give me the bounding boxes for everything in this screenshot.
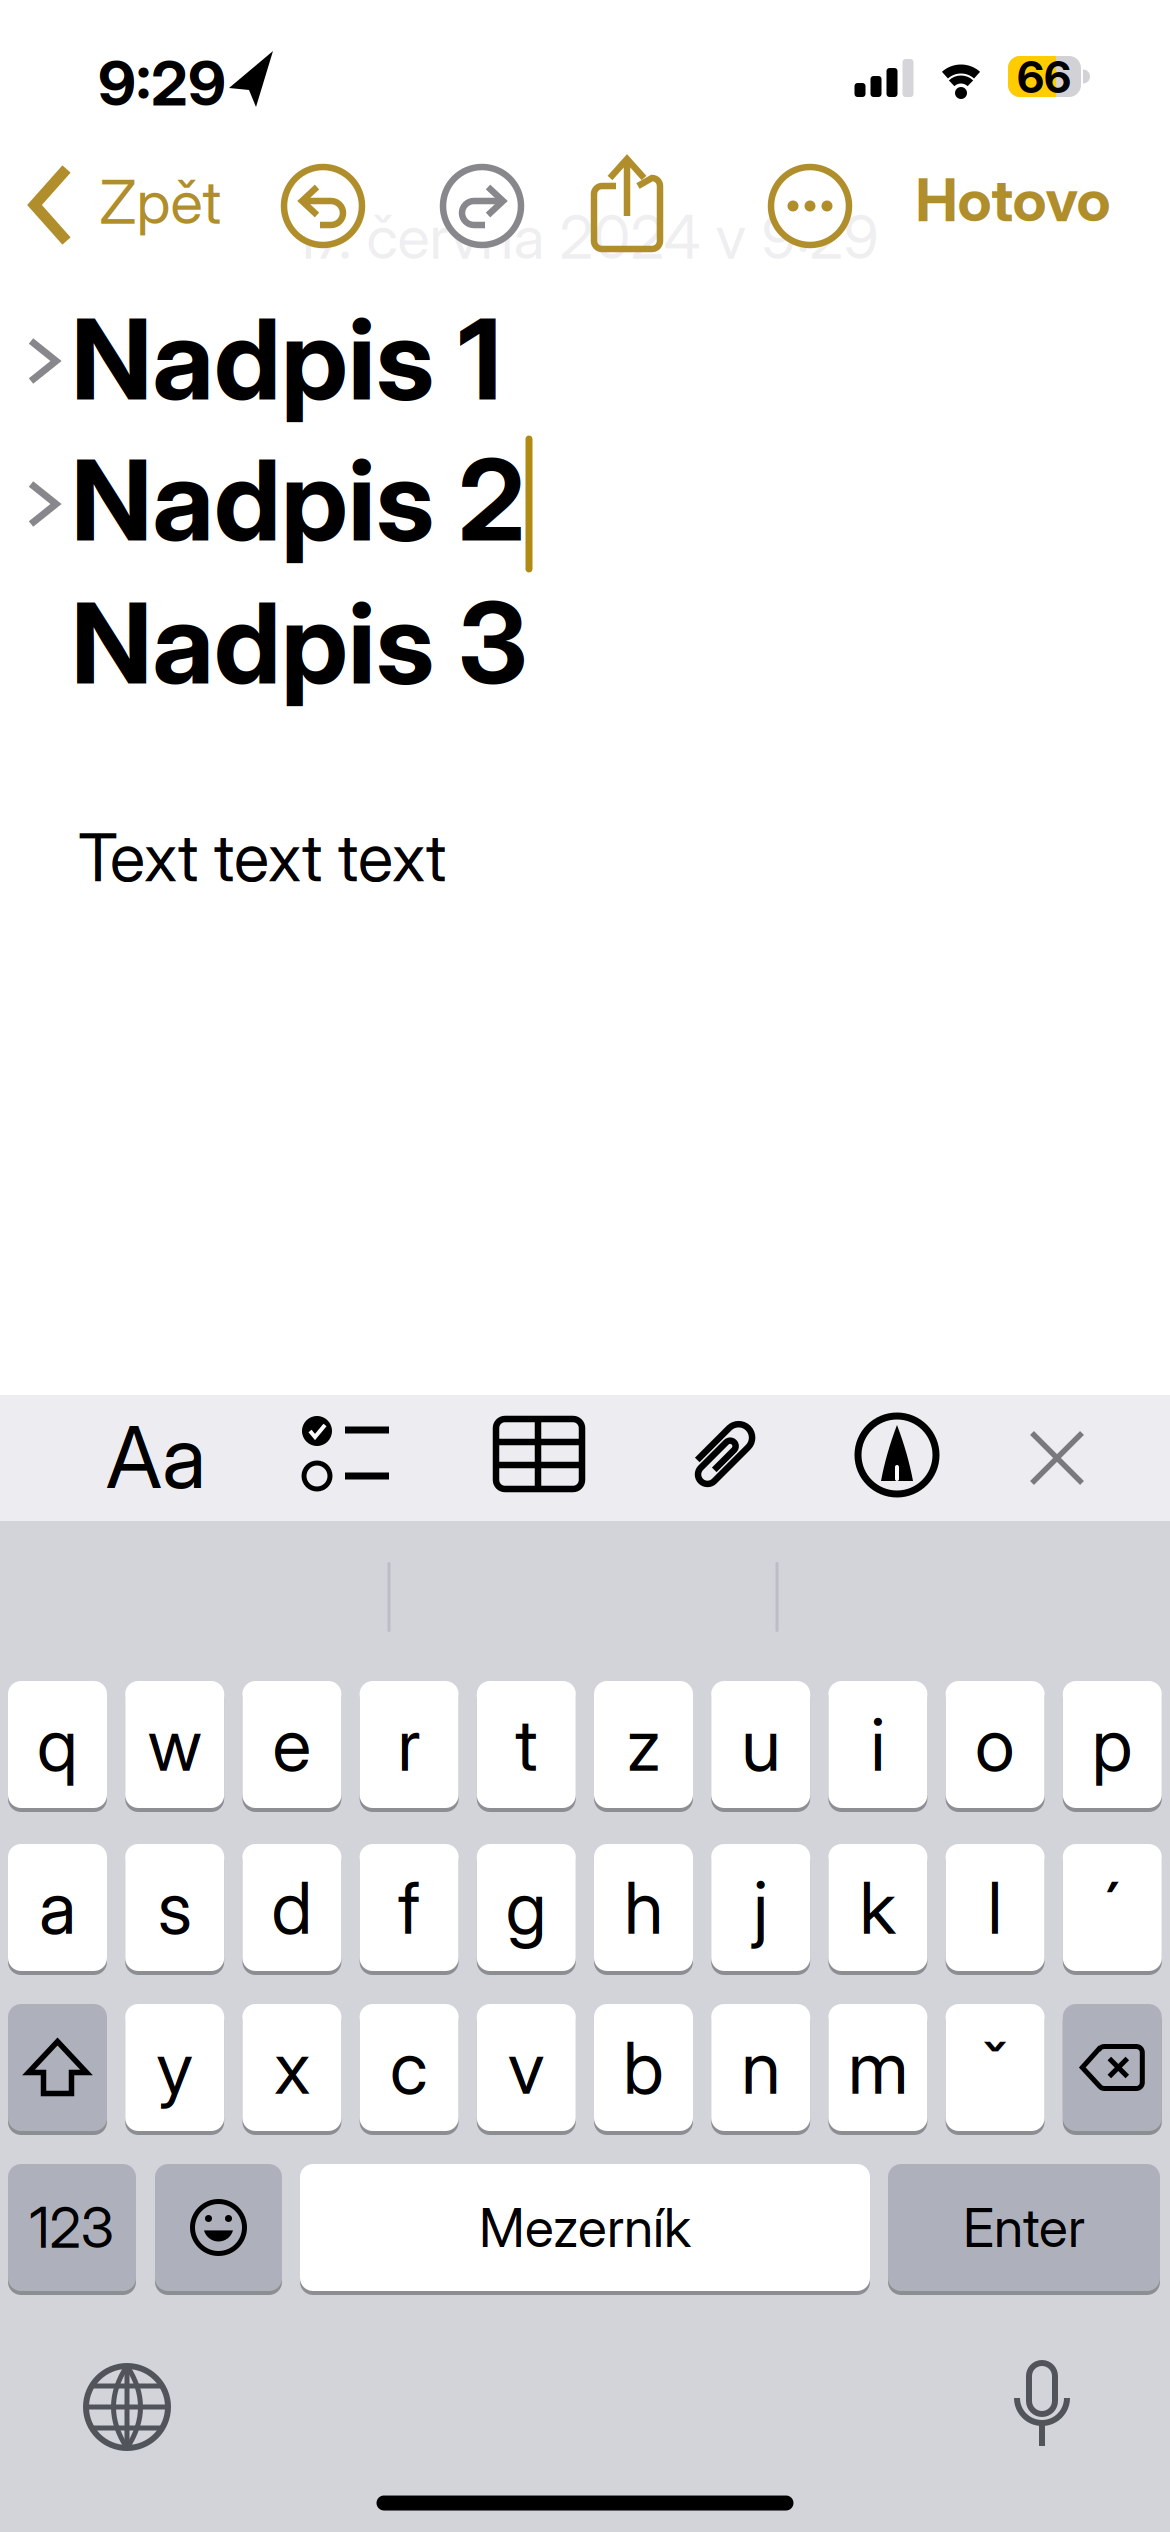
button[interactable]: m [828, 2002, 927, 2133]
button[interactable] [590, 154, 668, 250]
button[interactable]: w [125, 1679, 224, 1810]
staticText: 123 [29, 2194, 114, 2261]
staticText: u [741, 1701, 780, 1788]
button[interactable]: Mezerník [300, 2162, 870, 2293]
staticText: v [508, 2024, 545, 2111]
button[interactable] [1063, 2002, 1162, 2133]
button[interactable] [27, 480, 61, 528]
staticText: l [988, 1864, 1003, 1951]
staticText: 17. června 2024 v 9:29 [293, 201, 878, 273]
staticText: h [624, 1864, 663, 1951]
staticText: Zpět [99, 166, 221, 238]
staticText: Text text text [78, 818, 446, 897]
staticText: d [271, 1864, 312, 1951]
staticText: f [398, 1864, 420, 1951]
button[interactable]: f [360, 1842, 459, 1973]
button[interactable]: ˇ [946, 2002, 1045, 2133]
button[interactable]: z [594, 1679, 693, 1810]
staticText: j [753, 1864, 768, 1951]
staticText: t [515, 1701, 537, 1788]
button[interactable]: n [711, 2002, 810, 2133]
button[interactable]: a [8, 1842, 107, 1973]
button[interactable]: j [711, 1842, 810, 1973]
button[interactable]: t [477, 1679, 576, 1810]
staticText: p [1092, 1701, 1133, 1788]
staticText: Mezerník [479, 2195, 691, 2260]
button[interactable]: k [828, 1842, 927, 1973]
staticText: Hotovo [915, 164, 1110, 235]
staticText: r [398, 1701, 421, 1788]
staticText: c [390, 2024, 428, 2111]
staticText: w [148, 1701, 202, 1788]
button[interactable] [155, 2162, 282, 2293]
button[interactable]: Zpět [27, 165, 262, 245]
button[interactable]: b [594, 2002, 693, 2133]
staticText: g [506, 1864, 547, 1951]
button[interactable] [854, 1412, 940, 1498]
button[interactable]: 123 [8, 2162, 136, 2293]
button[interactable]: c [360, 2002, 459, 2133]
button[interactable] [279, 162, 367, 250]
staticText: 9:29 [98, 46, 226, 120]
button[interactable] [679, 1412, 765, 1498]
staticText: z [626, 1701, 660, 1788]
button[interactable]: u [711, 1679, 810, 1810]
button[interactable]: Enter [888, 2162, 1160, 2293]
button[interactable]: e [242, 1679, 341, 1810]
staticText: Enter [963, 2195, 1085, 2260]
staticText: x [274, 2024, 310, 2111]
button[interactable]: i [828, 1679, 927, 1810]
button[interactable] [493, 1416, 585, 1492]
button[interactable]: x [242, 2002, 341, 2133]
staticText: k [859, 1864, 896, 1951]
staticText: ´ [1104, 1864, 1121, 1951]
staticText: Nadpis 1 [71, 291, 502, 426]
staticText: e [272, 1701, 311, 1788]
staticText: y [156, 2024, 193, 2111]
button[interactable]: p [1063, 1679, 1162, 1810]
button[interactable]: y [125, 2002, 224, 2133]
button[interactable]: Aa [106, 1405, 206, 1509]
button[interactable] [766, 162, 854, 250]
button[interactable] [438, 162, 526, 250]
button[interactable]: ´ [1063, 1842, 1162, 1973]
staticText: q [37, 1701, 78, 1788]
staticText: m [848, 2024, 908, 2111]
button[interactable]: r [360, 1679, 459, 1810]
button[interactable] [301, 1418, 391, 1494]
staticText: a [39, 1864, 76, 1951]
button[interactable] [8, 2002, 107, 2133]
button[interactable] [1029, 1430, 1085, 1486]
button[interactable]: o [946, 1679, 1045, 1810]
staticText: n [741, 2024, 780, 2111]
button[interactable]: g [477, 1842, 576, 1973]
button[interactable]: d [242, 1842, 341, 1973]
staticText: s [158, 1864, 192, 1951]
staticText: b [623, 2024, 664, 2111]
button[interactable]: v [477, 2002, 576, 2133]
button[interactable]: Hotovo [915, 164, 1110, 235]
staticText: Nadpis 3 [71, 575, 527, 710]
button[interactable] [1012, 2360, 1072, 2452]
staticText: 66 [1017, 50, 1071, 104]
button[interactable]: q [8, 1679, 107, 1810]
button[interactable] [82, 2362, 172, 2452]
staticText: i [870, 1701, 885, 1788]
button[interactable]: s [125, 1842, 224, 1973]
staticText: ˇ [981, 2024, 1009, 2111]
staticText: o [975, 1701, 1015, 1788]
staticText: Nadpis 2 [71, 432, 525, 567]
button[interactable] [27, 337, 61, 385]
button[interactable]: l [946, 1842, 1045, 1973]
staticText: Aa [106, 1405, 206, 1509]
button[interactable]: h [594, 1842, 693, 1973]
